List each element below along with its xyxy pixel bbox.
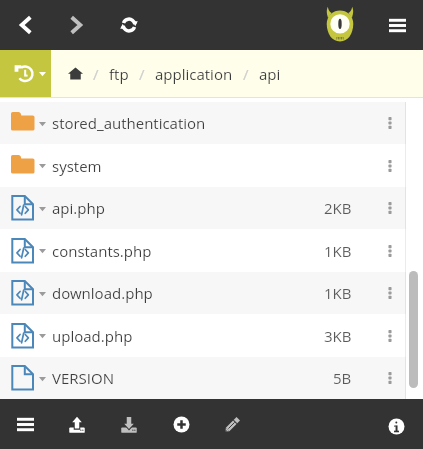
button[interactable]: Refresh [117, 13, 141, 37]
button[interactable]: Upload [68, 415, 86, 433]
staticText: / [93, 64, 99, 84]
staticText: 3KB [324, 326, 352, 346]
button[interactable]: constants.php [0, 229, 423, 272]
button[interactable]: stored_authentication [0, 102, 423, 144]
button[interactable]: More options [380, 326, 400, 346]
button[interactable]: system [0, 144, 423, 187]
button[interactable]: api [259, 64, 281, 84]
button[interactable]: VERSION [0, 357, 423, 399]
button[interactable]: More options [380, 368, 400, 388]
staticText: / [139, 64, 145, 84]
button[interactable]: Back [10, 9, 42, 41]
button[interactable]: download.php [0, 272, 423, 314]
button[interactable]: Download [120, 415, 138, 433]
staticText: api [259, 64, 281, 84]
button[interactable]: Rename [224, 416, 241, 433]
staticText: VERSION [52, 368, 114, 388]
button[interactable]: More options [380, 113, 400, 133]
button[interactable]: Home [68, 66, 83, 81]
staticText: upload.php [52, 326, 133, 346]
button[interactable]: application [155, 64, 233, 84]
button[interactable]: More options [380, 156, 400, 176]
button[interactable]: More options [380, 241, 400, 261]
button[interactable]: api.php [0, 187, 423, 229]
button[interactable]: History [0, 50, 51, 97]
button[interactable]: Menu [389, 17, 406, 34]
staticText: 1KB [324, 241, 352, 261]
staticText: 5B [333, 368, 352, 388]
staticText: constants.php [52, 241, 152, 261]
button[interactable]: New folder [173, 416, 190, 433]
staticText: stored_authentication [52, 113, 206, 133]
button[interactable]: More options [380, 283, 400, 303]
button[interactable]: Menu [17, 416, 34, 433]
staticText: 2KB [324, 198, 352, 218]
staticText: api.php [52, 198, 105, 218]
staticText: system [52, 156, 102, 176]
button[interactable]: Info [388, 418, 405, 435]
staticText: ftp [109, 64, 129, 84]
button[interactable]: Forward [60, 9, 92, 41]
button[interactable]: More options [380, 198, 400, 218]
staticText: application [155, 64, 233, 84]
button[interactable]: Monsta FTP [326, 7, 354, 43]
staticText: / [243, 64, 249, 84]
staticText: download.php [52, 283, 153, 303]
button[interactable]: upload.php [0, 314, 423, 357]
staticText: 1KB [324, 283, 352, 303]
button[interactable]: ftp [109, 64, 129, 84]
